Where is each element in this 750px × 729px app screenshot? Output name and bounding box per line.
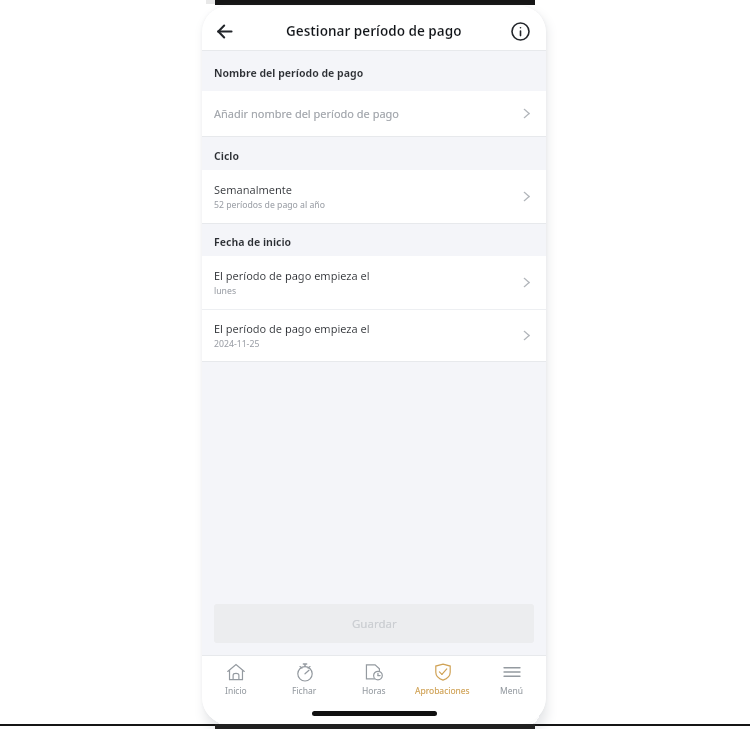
staticText: Semanalmente bbox=[214, 182, 292, 197]
staticText: Horas bbox=[362, 685, 386, 697]
staticText: El período de pago empieza el bbox=[214, 321, 370, 336]
staticText: Fichar bbox=[292, 685, 317, 697]
button[interactable]: Aprobaciones bbox=[408, 656, 477, 704]
button[interactable]: Fichar bbox=[270, 656, 339, 704]
staticText: Gestionar período de pago bbox=[286, 22, 462, 40]
staticText: Aprobaciones bbox=[415, 685, 470, 697]
button[interactable]: Menú bbox=[477, 656, 546, 704]
staticText: Añadir nombre del período de pago bbox=[214, 106, 400, 121]
staticText: Guardar bbox=[352, 616, 397, 632]
staticText: 52 períodos de pago al año bbox=[214, 199, 325, 211]
staticText: Nombre del período de pago bbox=[214, 66, 364, 80]
button[interactable]: El período de pago empieza el bbox=[202, 256, 546, 309]
button[interactable]: El período de pago empieza el bbox=[202, 310, 546, 361]
staticText: Fecha de inicio bbox=[214, 235, 292, 249]
button[interactable]: Inicio bbox=[202, 656, 270, 704]
button[interactable]: Añadir nombre del período de pago bbox=[202, 91, 546, 136]
staticText: Inicio bbox=[225, 685, 247, 697]
staticText: Ciclo bbox=[214, 149, 239, 163]
staticText: 2024-11-25 bbox=[214, 338, 260, 350]
staticText: El período de pago empieza el bbox=[214, 268, 370, 283]
button[interactable]: Info bbox=[500, 11, 540, 51]
staticText: lunes bbox=[214, 285, 237, 297]
staticText: Menú bbox=[500, 685, 524, 697]
button[interactable]: Back bbox=[204, 11, 244, 51]
button[interactable]: Horas bbox=[339, 656, 408, 704]
button[interactable]: Semanalmente bbox=[202, 170, 546, 223]
